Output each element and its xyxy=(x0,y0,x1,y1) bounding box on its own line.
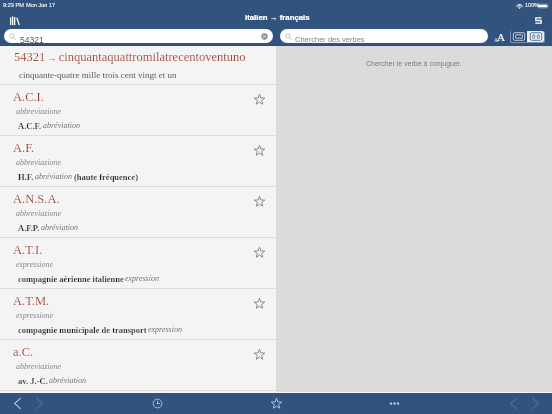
staticText: abbreviazione xyxy=(16,158,62,167)
button[interactable]: Favorite xyxy=(253,93,265,105)
button[interactable]: A.T.M. xyxy=(0,289,276,340)
button[interactable]: Single pane xyxy=(511,31,527,42)
button[interactable]: Favorite xyxy=(253,195,265,207)
staticText: A.C.I. xyxy=(13,90,44,104)
staticText: A.N.S.A. xyxy=(13,192,60,206)
button[interactable]: 54321 xyxy=(4,29,273,43)
button[interactable]: Chercher des verbes xyxy=(280,29,488,43)
button[interactable]: Favorite xyxy=(253,246,265,258)
button[interactable]: A.F. xyxy=(0,136,276,187)
staticText: Mon Jun 17 xyxy=(26,2,56,8)
staticText: expression xyxy=(148,325,182,334)
staticText: espressione xyxy=(16,311,54,320)
staticText: A.F. xyxy=(13,141,35,155)
staticText: (haute fréquence) xyxy=(74,172,138,181)
button[interactable]: A.C.I. xyxy=(0,85,276,136)
button[interactable]: Forward xyxy=(30,393,48,413)
staticText: cinquante-quatre mille trois cent vingt … xyxy=(19,70,177,80)
staticText: 54321 → cinquantaquattromilatrecentovent… xyxy=(14,50,246,64)
staticText: expression xyxy=(125,274,159,283)
staticText: espressione xyxy=(16,260,54,269)
button[interactable]: Favorite xyxy=(253,144,265,156)
staticText: abbreviazione xyxy=(16,107,62,116)
button[interactable]: Favorites xyxy=(267,393,285,413)
button[interactable]: a.C. xyxy=(0,340,276,391)
staticText: abbreviazione xyxy=(16,362,62,371)
button[interactable]: 54321 → cinquantaquattromilatrecentovent… xyxy=(0,46,276,85)
button[interactable]: Split pane xyxy=(527,31,544,42)
button[interactable]: A.N.S.A. xyxy=(0,187,276,238)
staticText: Chercher le verbe à conjuguer. xyxy=(366,60,462,68)
staticText: A.T.I. xyxy=(13,243,43,257)
button[interactable]: Next xyxy=(526,393,544,413)
staticText: av. J.-C. xyxy=(18,376,48,385)
staticText: 54321 xyxy=(20,35,44,43)
button[interactable]: Library xyxy=(6,13,23,27)
button[interactable]: Previous xyxy=(504,393,522,413)
staticText: H.F. xyxy=(18,172,34,181)
staticText: abréviation xyxy=(43,121,80,130)
button[interactable]: History xyxy=(148,393,166,413)
staticText: a.C. xyxy=(13,345,34,359)
button[interactable]: Swap languages xyxy=(530,12,546,28)
staticText: compagnie municipale de transport xyxy=(18,325,147,334)
button[interactable]: Favorite xyxy=(253,348,265,360)
staticText: A xyxy=(494,37,498,43)
staticText: 9:23 PM xyxy=(3,2,24,8)
staticText: abréviation xyxy=(35,172,72,181)
button[interactable]: Favorite xyxy=(253,297,265,309)
staticText: A xyxy=(497,31,505,43)
staticText: 100% xyxy=(525,2,540,8)
staticText: abréviation xyxy=(49,376,86,385)
staticText: abbreviazione xyxy=(16,209,62,218)
button[interactable]: More xyxy=(385,393,403,413)
staticText: A.T.M. xyxy=(13,294,50,308)
staticText: abréviation xyxy=(41,223,78,232)
staticText: Chercher des verbes xyxy=(295,35,365,43)
button[interactable]: Back xyxy=(8,393,26,413)
button[interactable]: A.T.I. xyxy=(0,238,276,289)
staticText: italien → français xyxy=(245,13,310,22)
staticText: compagnie aérienne italienne xyxy=(18,274,124,283)
staticText: A.C.F. xyxy=(18,121,42,130)
staticText: A.F.P. xyxy=(18,223,40,232)
button[interactable]: Text size xyxy=(492,29,508,44)
